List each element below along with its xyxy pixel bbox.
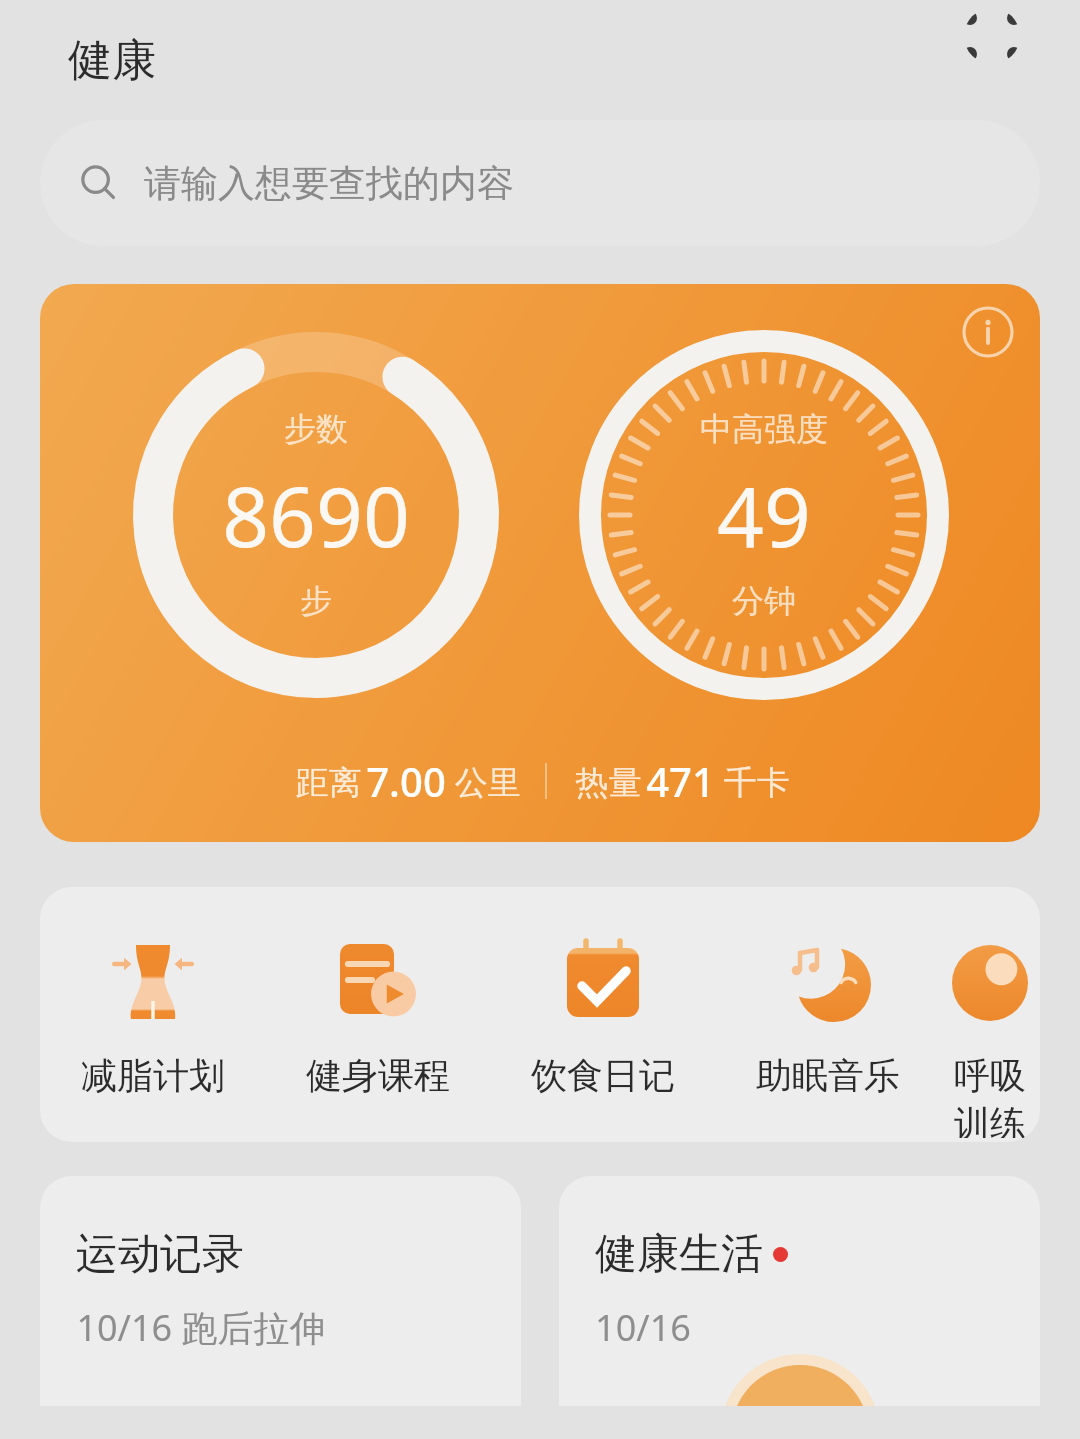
staticText: 健康	[68, 33, 156, 88]
staticText: 运动记录	[76, 1228, 244, 1281]
staticText: 请输入想要查找的内容	[144, 160, 514, 207]
staticText: 热量	[571, 759, 646, 804]
staticText: 步	[300, 581, 332, 621]
staticText: 中高强度	[700, 409, 828, 449]
staticText: 公里	[446, 759, 521, 804]
staticText: 健康生活	[595, 1228, 763, 1281]
staticText: 呼吸训练	[940, 1053, 1040, 1138]
staticText: 助眠音乐	[756, 1053, 900, 1098]
button[interactable]: 请输入想要查找的内容	[40, 120, 1040, 246]
staticText: 7.00	[366, 754, 446, 808]
staticText: 分钟	[732, 581, 796, 621]
button[interactable]: 呼吸训练	[940, 925, 1040, 1142]
button[interactable]: 饮食日记	[490, 925, 715, 1102]
staticText: 饮食日记	[531, 1053, 675, 1098]
button[interactable]: 运动记录	[40, 1176, 521, 1406]
button[interactable]: 减脂计划	[40, 925, 265, 1102]
button[interactable]: Information	[40, 284, 1040, 842]
button[interactable]: 健身课程	[265, 925, 490, 1102]
staticText: 千卡	[715, 759, 790, 804]
staticText: 471	[646, 754, 715, 808]
button[interactable]: 助眠音乐	[715, 925, 940, 1102]
button[interactable]: Information	[958, 302, 1018, 362]
staticText: 49	[717, 459, 811, 571]
staticText: 健身课程	[306, 1053, 450, 1098]
staticText: 10/16 跑后拉伸	[76, 1303, 326, 1352]
button[interactable]: More options	[964, 8, 1020, 64]
staticText: 8690	[222, 459, 410, 571]
staticText: 10/16	[595, 1303, 691, 1352]
button[interactable]: 健康生活	[559, 1176, 1040, 1406]
staticText: 步数	[284, 409, 348, 449]
staticText: 减脂计划	[81, 1053, 225, 1098]
staticText: 距离	[291, 759, 366, 804]
